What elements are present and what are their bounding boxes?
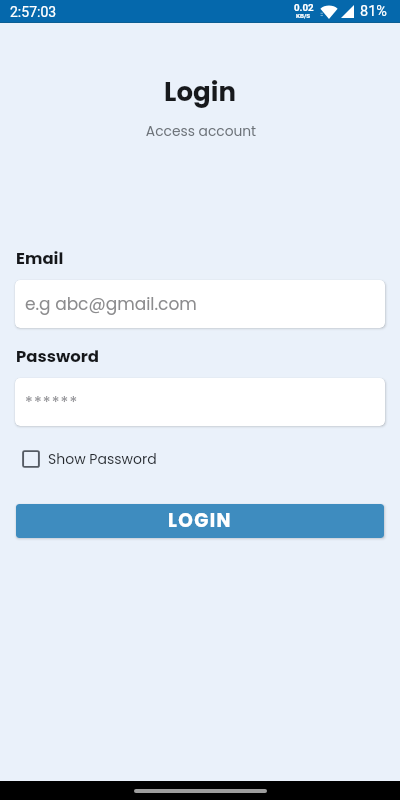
- button[interactable]: ******: [15, 378, 385, 426]
- other: Wi-Fi: [320, 5, 338, 19]
- staticText: Email: [16, 247, 64, 270]
- staticText: Access account: [1, 122, 400, 141]
- staticText: Password: [16, 345, 99, 368]
- staticText: Login: [0, 74, 400, 110]
- button[interactable]: e.g abc@gmail.com: [15, 280, 385, 328]
- button[interactable]: Show Password: [10, 437, 169, 481]
- staticText: e.g abc@gmail.com: [25, 292, 197, 316]
- staticText: 2:57:03: [10, 4, 57, 20]
- button[interactable]: LOGIN: [16, 504, 384, 538]
- other: Mobile signal: [341, 5, 354, 18]
- staticText: 0.02: [294, 2, 314, 13]
- staticText: Show Password: [48, 449, 157, 469]
- staticText: ******: [25, 391, 79, 413]
- staticText: 81%: [360, 3, 387, 20]
- staticText: KB/S: [296, 12, 310, 19]
- staticText: LOGIN: [168, 508, 232, 534]
